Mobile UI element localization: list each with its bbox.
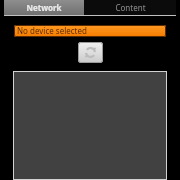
button[interactable]: Network [4,0,84,16]
staticText: Network [26,2,62,13]
staticText: Content [115,2,146,13]
button[interactable]: Refresh [78,42,103,63]
button[interactable]: No device selected [14,25,166,37]
button[interactable] [13,71,167,180]
button[interactable]: Content [84,0,176,16]
staticText: No device selected [17,25,87,36]
